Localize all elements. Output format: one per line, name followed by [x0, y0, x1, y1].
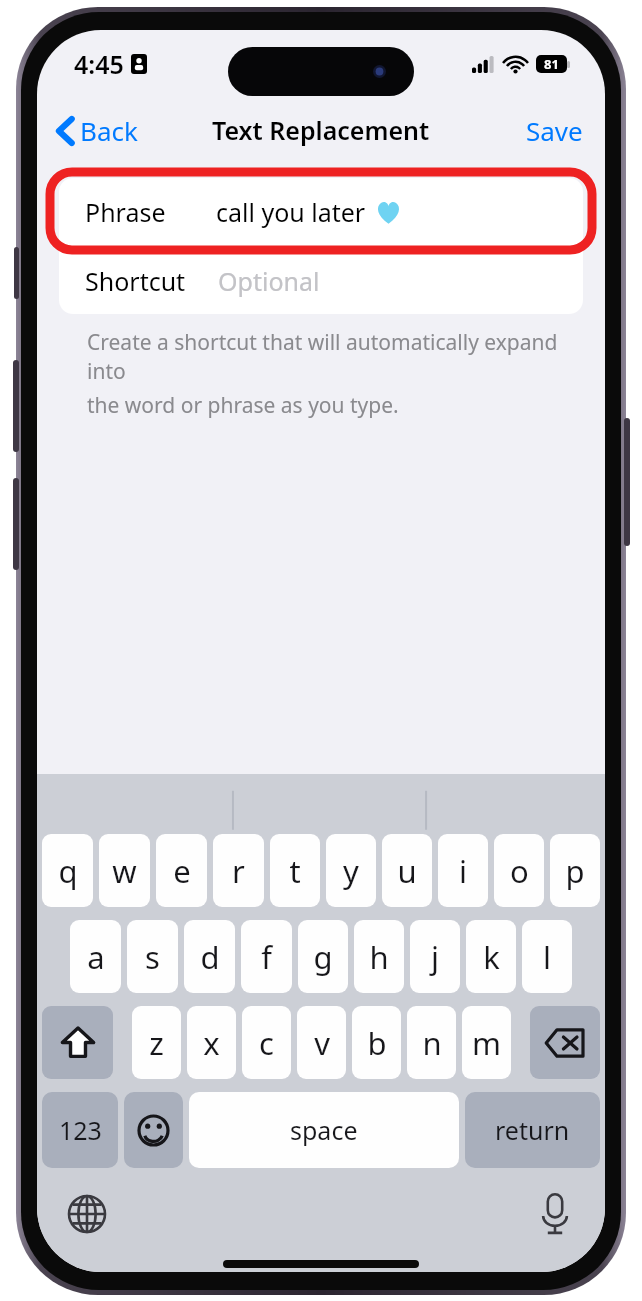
- button[interactable]: Shift: [42, 1006, 113, 1079]
- staticText: Text Replacement: [212, 113, 430, 147]
- staticText: r: [232, 850, 245, 892]
- button[interactable]: k: [466, 920, 516, 993]
- staticText: a: [87, 936, 105, 978]
- staticText: Phrase: [85, 195, 166, 229]
- staticText: Save: [526, 113, 583, 148]
- staticText: 123: [59, 1113, 102, 1147]
- button[interactable]: g: [298, 920, 348, 993]
- button[interactable]: f: [241, 920, 292, 993]
- button[interactable]: y: [326, 834, 376, 907]
- button[interactable]: m: [462, 1006, 511, 1079]
- staticText: m: [472, 1022, 501, 1064]
- staticText: u: [397, 850, 417, 892]
- staticText: o: [510, 850, 529, 892]
- button[interactable]: r: [213, 834, 264, 907]
- button[interactable]: Emoji: [124, 1092, 183, 1168]
- staticText: v: [314, 1022, 330, 1064]
- button[interactable]: o: [494, 834, 544, 907]
- button[interactable]: l: [522, 920, 572, 993]
- staticText: w: [112, 850, 137, 892]
- button[interactable]: q: [42, 834, 93, 907]
- staticText: call you later: [216, 195, 366, 229]
- staticText: b: [367, 1022, 387, 1064]
- button[interactable]: t: [270, 834, 320, 907]
- staticText: space: [290, 1113, 358, 1147]
- button[interactable]: v: [297, 1006, 346, 1079]
- staticText: Optional: [218, 264, 320, 298]
- staticText: e: [173, 850, 191, 892]
- staticText: d: [200, 936, 220, 978]
- staticText: y: [343, 850, 359, 892]
- staticText: 4:45: [74, 47, 124, 81]
- button[interactable]: b: [352, 1006, 401, 1079]
- button[interactable]: Shortcut: [59, 247, 583, 314]
- button[interactable]: s: [127, 920, 178, 993]
- button[interactable]: u: [382, 834, 432, 907]
- button[interactable]: Switch keyboard: [59, 1186, 115, 1242]
- staticText: t: [289, 850, 301, 892]
- staticText: return: [495, 1113, 570, 1147]
- button[interactable]: e: [156, 834, 207, 907]
- button[interactable]: z: [132, 1006, 181, 1079]
- staticText: f: [261, 936, 272, 978]
- button[interactable]: Dictation: [527, 1186, 583, 1242]
- staticText: g: [313, 936, 333, 978]
- button[interactable]: p: [550, 834, 600, 907]
- button[interactable]: space: [189, 1092, 459, 1168]
- staticText: the word or phrase as you type.: [87, 391, 399, 420]
- button[interactable]: w: [99, 834, 150, 907]
- button[interactable]: i: [438, 834, 488, 907]
- button[interactable]: Back: [49, 107, 146, 154]
- staticText: p: [565, 850, 585, 892]
- staticText: q: [58, 850, 78, 892]
- staticText: Back: [80, 113, 138, 148]
- staticText: 81: [544, 55, 559, 73]
- staticText: h: [369, 936, 389, 978]
- staticText: s: [145, 936, 160, 978]
- button[interactable]: Delete: [530, 1006, 600, 1079]
- button[interactable]: return: [465, 1092, 600, 1168]
- staticText: c: [259, 1022, 274, 1064]
- button[interactable]: n: [407, 1006, 456, 1079]
- button[interactable]: x: [187, 1006, 236, 1079]
- button[interactable]: d: [184, 920, 235, 993]
- staticText: j: [431, 936, 439, 978]
- staticText: Shortcut: [85, 264, 186, 298]
- staticText: z: [149, 1022, 164, 1064]
- button[interactable]: 123: [42, 1092, 118, 1168]
- button[interactable]: a: [70, 920, 121, 993]
- staticText: n: [422, 1022, 442, 1064]
- staticText: k: [483, 936, 500, 978]
- button[interactable]: c: [242, 1006, 291, 1079]
- button[interactable]: h: [354, 920, 404, 993]
- button[interactable]: Save: [518, 107, 591, 154]
- staticText: i: [459, 850, 467, 892]
- button[interactable]: Phrase: [59, 178, 583, 246]
- staticText: x: [203, 1022, 220, 1064]
- button[interactable]: j: [410, 920, 460, 993]
- staticText: Create a shortcut that will automaticall…: [87, 328, 565, 386]
- staticText: l: [543, 936, 551, 978]
